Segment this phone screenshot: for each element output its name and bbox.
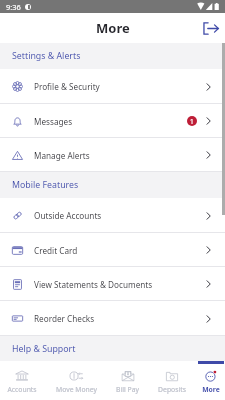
button[interactable]: Credit Card — [0, 233, 225, 267]
staticText: 9:36 — [6, 2, 21, 12]
button[interactable]: Move Money — [44, 361, 108, 400]
button[interactable]: Deposits — [147, 361, 197, 400]
button[interactable]: Bill Pay — [108, 361, 147, 400]
button[interactable]: Manage Alerts — [0, 138, 225, 172]
staticText: Reorder Checks — [34, 313, 95, 324]
staticText: More — [96, 19, 130, 37]
button[interactable]: Accounts — [0, 361, 44, 400]
staticText: More — [202, 385, 220, 394]
staticText: Bill Pay — [116, 385, 139, 394]
button[interactable]: Reorder Checks — [0, 301, 225, 336]
button[interactable]: Outside Accounts — [0, 198, 225, 233]
staticText: Profile & Security — [34, 81, 100, 92]
staticText: Settings & Alerts — [12, 50, 81, 62]
staticText: 1 — [190, 117, 194, 126]
staticText: Deposits — [158, 385, 186, 394]
staticText: Help & Support — [12, 343, 76, 355]
button[interactable]: Log out — [200, 18, 221, 39]
staticText: Credit Card — [34, 245, 78, 256]
staticText: View Statements & Documents — [34, 279, 153, 290]
staticText: Messages — [34, 116, 73, 127]
button[interactable]: Profile & Security — [0, 69, 225, 104]
staticText: Mobile Features — [12, 179, 79, 191]
staticText: Move Money — [56, 385, 97, 394]
button[interactable]: More — [197, 361, 225, 400]
staticText: Outside Accounts — [34, 210, 102, 221]
staticText: Manage Alerts — [34, 150, 90, 161]
button[interactable]: Messages — [0, 104, 225, 138]
staticText: Accounts — [7, 385, 37, 394]
button[interactable]: View Statements & Documents — [0, 267, 225, 301]
